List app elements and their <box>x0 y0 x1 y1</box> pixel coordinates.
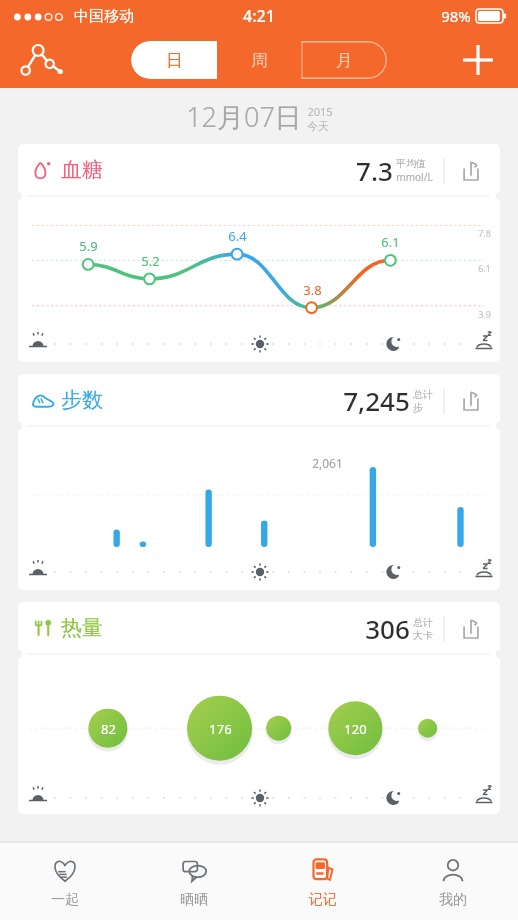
button[interactable]: 我的 <box>388 843 518 920</box>
staticText: 82 <box>101 720 116 738</box>
staticText: 我的 <box>439 891 467 909</box>
staticText: mmol/L <box>396 170 433 184</box>
staticText: 7.3 <box>356 153 393 188</box>
staticText: 7.8 <box>478 227 491 239</box>
staticText: 3.8 <box>303 281 322 299</box>
staticText: 6.1 <box>478 262 491 274</box>
staticText: 306 <box>365 611 410 646</box>
staticText: 大卡 <box>413 629 433 642</box>
button[interactable]: 晒晒 <box>129 843 258 920</box>
button[interactable]: 热量 <box>18 602 500 814</box>
staticText: 120 <box>344 720 367 738</box>
staticText: 总计 <box>413 616 433 629</box>
staticText: 周 <box>251 50 268 71</box>
staticText: 今天 <box>307 119 329 133</box>
staticText: 血糖 <box>61 157 103 183</box>
staticText: 6.1 <box>381 233 400 251</box>
staticText: 5.9 <box>79 237 98 255</box>
button[interactable]: 日 <box>131 41 217 79</box>
staticText: 6.4 <box>228 227 247 245</box>
button[interactable]: Add <box>454 36 502 84</box>
button[interactable]: Share <box>456 156 486 186</box>
staticText: 平均值 <box>396 157 426 170</box>
staticText: 中国移动 <box>74 7 134 26</box>
staticText: 5.2 <box>141 252 160 270</box>
staticText: 2,061 <box>312 455 343 471</box>
staticText: 3.9 <box>478 308 491 320</box>
staticText: 一起 <box>51 891 79 909</box>
button[interactable]: 一起 <box>0 843 129 920</box>
staticText: 步 <box>413 401 423 414</box>
staticText: 月 <box>336 50 353 71</box>
button[interactable]: Share <box>456 614 486 644</box>
staticText: 7,245 <box>343 383 410 418</box>
button[interactable]: Share <box>456 386 486 416</box>
button[interactable]: 月 <box>302 41 387 79</box>
button[interactable]: 步数 <box>18 374 500 590</box>
staticText: 总计 <box>413 388 433 401</box>
staticText: 步数 <box>61 387 103 413</box>
button[interactable]: Trends <box>18 36 66 84</box>
staticText: 晒晒 <box>180 891 208 909</box>
staticText: 热量 <box>61 615 103 641</box>
staticText: 4:21 <box>243 5 275 27</box>
staticText: 176 <box>209 720 232 738</box>
button[interactable]: 周 <box>217 41 302 79</box>
staticText: 98% <box>441 6 471 26</box>
staticText: 日 <box>166 50 183 71</box>
staticText: 记记 <box>309 891 337 909</box>
button[interactable]: 血糖 <box>18 144 500 362</box>
staticText: 2015 <box>307 104 333 119</box>
button[interactable]: 记记 <box>258 843 388 920</box>
staticText: 12月07日 <box>186 98 302 135</box>
